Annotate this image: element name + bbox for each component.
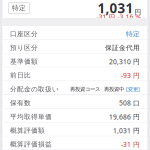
- staticText: [変更]: [126, 86, 140, 93]
- staticText: -3.16 %: [117, 13, 141, 21]
- staticText: 保証金代用: [105, 44, 140, 52]
- staticText: 特定: [126, 30, 140, 38]
- staticText: -31 円: [96, 13, 115, 21]
- staticText: 保有数: [10, 99, 31, 107]
- staticText: 概算評価損益: [10, 140, 52, 148]
- staticText: 1,031: [97, 0, 133, 17]
- staticText: 預り区分: [10, 44, 38, 52]
- staticText: 508 口: [119, 99, 140, 107]
- button[interactable]: 特定: [8, 2, 29, 14]
- staticText: 基準価額: [10, 57, 38, 66]
- staticText: 1,031 円: [113, 126, 140, 135]
- staticText: -93 円: [121, 71, 140, 80]
- staticText: 平均取得単価: [10, 113, 52, 121]
- staticText: 再投資コース 再投資中: [70, 86, 126, 92]
- staticText: -31 円: [121, 140, 140, 149]
- staticText: 前日比: [10, 71, 31, 79]
- staticText: 19,686 円: [109, 112, 140, 121]
- staticText: 円: [134, 8, 141, 16]
- staticText: 特定: [12, 4, 26, 12]
- staticText: 概算評価額: [10, 126, 45, 135]
- staticText: 口座区分: [10, 30, 38, 38]
- staticText: 分配金の取扱い: [10, 85, 59, 93]
- staticText: 20,310 円: [109, 57, 140, 66]
